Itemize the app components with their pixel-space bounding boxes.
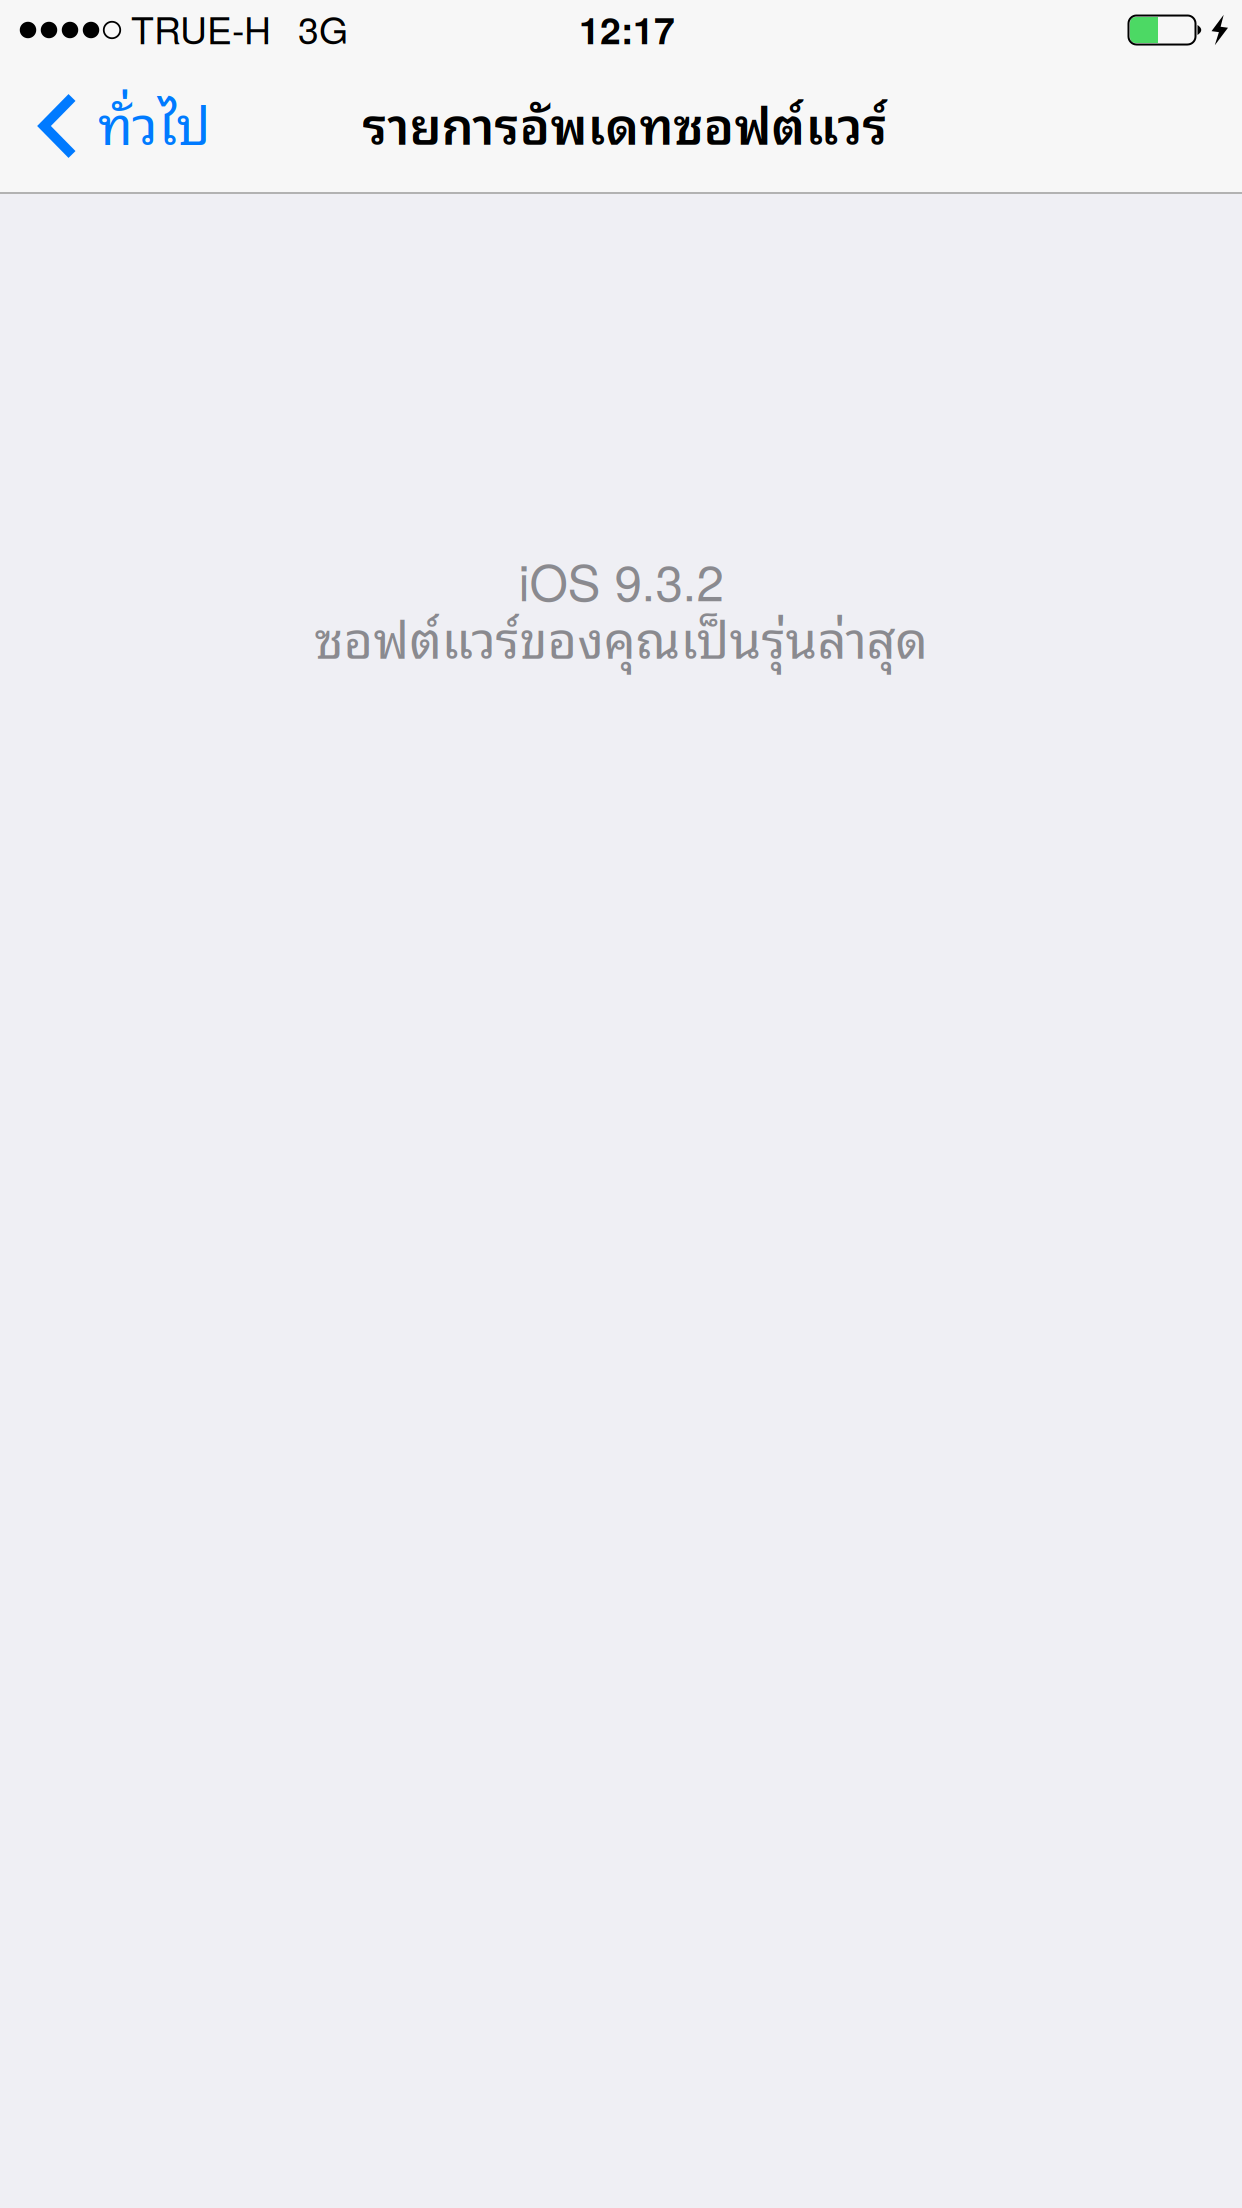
staticText: iOS 9.3.2 <box>518 545 723 615</box>
staticText: 12:17 <box>579 2 675 56</box>
staticText: TRUE-H <box>131 1 271 55</box>
staticText: รายการอัพเดทซอฟต์แวร์ <box>362 81 887 163</box>
staticText: ซอฟต์แวร์ของคุณเป็นรุ่นล่าสุด <box>314 595 927 677</box>
staticText: ทั่วไป <box>98 78 210 164</box>
staticText: 3G <box>298 1 348 55</box>
button[interactable]: Back to General <box>0 60 234 192</box>
